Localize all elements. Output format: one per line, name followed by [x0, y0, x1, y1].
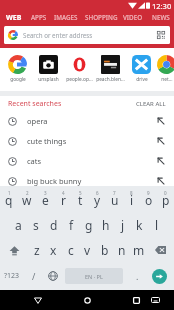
- button[interactable]: Backspace: [147, 238, 174, 262]
- staticText: z: [34, 242, 40, 258]
- staticText: drive: [136, 76, 148, 83]
- staticText: net...: [161, 76, 173, 83]
- button[interactable]: google: [2, 55, 33, 83]
- staticText: people.op...: [66, 76, 93, 83]
- button[interactable]: .: [128, 262, 146, 290]
- button[interactable]: j: [114, 212, 131, 238]
- button[interactable]: Switch keyboard: [145, 290, 166, 310]
- staticText: r: [61, 192, 66, 208]
- staticText: 7: [113, 190, 116, 196]
- button[interactable]: m: [130, 238, 147, 262]
- button[interactable]: a: [9, 212, 27, 238]
- staticText: o: [145, 192, 153, 208]
- staticText: b: [101, 242, 109, 258]
- button[interactable]: EN · PL: [65, 268, 123, 284]
- button[interactable]: APPS: [30, 11, 47, 24]
- button[interactable]: Hide keyboard: [22, 290, 53, 310]
- staticText: cute things: [27, 136, 67, 146]
- button[interactable]: x: [45, 238, 62, 262]
- staticText: big buck bunny: [27, 176, 82, 186]
- staticText: Recent searches: [8, 99, 62, 109]
- button[interactable]: WEB: [5, 11, 23, 24]
- staticText: v: [84, 242, 91, 258]
- button[interactable]: unsplash: [33, 55, 64, 83]
- button[interactable]: /: [25, 262, 42, 290]
- button[interactable]: k: [131, 212, 148, 238]
- button[interactable]: opera: [0, 111, 174, 131]
- button[interactable]: Home: [72, 290, 102, 310]
- button[interactable]: IMAGES: [53, 11, 78, 24]
- button[interactable]: l: [148, 212, 165, 238]
- button[interactable]: peach.blen...: [95, 55, 126, 83]
- button[interactable]: c: [62, 238, 79, 262]
- staticText: t: [78, 192, 83, 208]
- button[interactable]: Search or enter address: [4, 26, 170, 44]
- button[interactable]: 7: [106, 186, 123, 212]
- staticText: f: [69, 217, 74, 233]
- staticText: ?123: [4, 271, 20, 281]
- staticText: google: [10, 76, 26, 83]
- staticText: 6: [96, 190, 99, 196]
- staticText: i: [130, 192, 134, 208]
- staticText: 4: [62, 190, 65, 196]
- button[interactable]: g: [80, 212, 97, 238]
- button[interactable]: cute things: [0, 131, 174, 151]
- button[interactable]: big buck bunny: [0, 171, 174, 191]
- staticText: a: [15, 217, 22, 233]
- staticText: y: [94, 192, 101, 208]
- staticText: 9: [147, 190, 150, 196]
- staticText: s: [33, 217, 39, 233]
- staticText: VIDEO: [123, 13, 143, 22]
- other: Insert query: [157, 117, 165, 125]
- button[interactable]: CLEAR ALL: [136, 100, 166, 108]
- button[interactable]: 3: [36, 186, 54, 212]
- staticText: .: [136, 270, 139, 282]
- button[interactable]: Recents: [122, 290, 150, 310]
- button[interactable]: 9: [140, 186, 157, 212]
- button[interactable]: b: [96, 238, 113, 262]
- button[interactable]: NEWS: [150, 11, 172, 24]
- staticText: j: [121, 217, 125, 233]
- button[interactable]: Shift: [0, 238, 28, 262]
- button[interactable]: 1: [0, 186, 18, 212]
- button[interactable]: s: [27, 212, 45, 238]
- staticText: d: [50, 217, 58, 233]
- staticText: EN · PL: [85, 273, 103, 280]
- button[interactable]: Go: [152, 269, 167, 284]
- staticText: peach.blen...: [96, 76, 125, 83]
- staticText: 8: [130, 190, 133, 196]
- button[interactable]: people.op...: [64, 55, 95, 83]
- button[interactable]: drive: [126, 55, 157, 83]
- staticText: k: [136, 217, 143, 233]
- button[interactable]: v: [79, 238, 96, 262]
- staticText: p: [162, 192, 170, 208]
- staticText: WEB: [6, 13, 22, 23]
- button[interactable]: Change language: [43, 262, 62, 290]
- button[interactable]: cats: [0, 151, 174, 171]
- button[interactable]: 6: [89, 186, 106, 212]
- other: Insert query: [157, 157, 165, 165]
- staticText: w: [22, 192, 32, 208]
- button[interactable]: 2: [18, 186, 36, 212]
- button[interactable]: VIDEO: [122, 11, 143, 24]
- staticText: 0: [164, 190, 167, 196]
- staticText: 1: [8, 190, 11, 196]
- other: Insert query: [157, 137, 165, 145]
- staticText: unsplash: [38, 76, 59, 83]
- button[interactable]: n: [113, 238, 130, 262]
- button[interactable]: 4: [54, 186, 72, 212]
- button[interactable]: 8: [123, 186, 140, 212]
- button[interactable]: f: [63, 212, 80, 238]
- staticText: APPS: [31, 13, 47, 22]
- button[interactable]: SHOPPING: [85, 11, 115, 24]
- button[interactable]: net...: [157, 55, 174, 83]
- button[interactable]: h: [97, 212, 114, 238]
- other: Insert query: [157, 177, 165, 185]
- button[interactable]: d: [45, 212, 63, 238]
- staticText: 2: [26, 190, 29, 196]
- button[interactable]: 0: [157, 186, 174, 212]
- button[interactable]: 5: [72, 186, 89, 212]
- button[interactable]: z: [28, 238, 45, 262]
- button[interactable]: ?123: [0, 262, 24, 290]
- staticText: q: [5, 192, 13, 208]
